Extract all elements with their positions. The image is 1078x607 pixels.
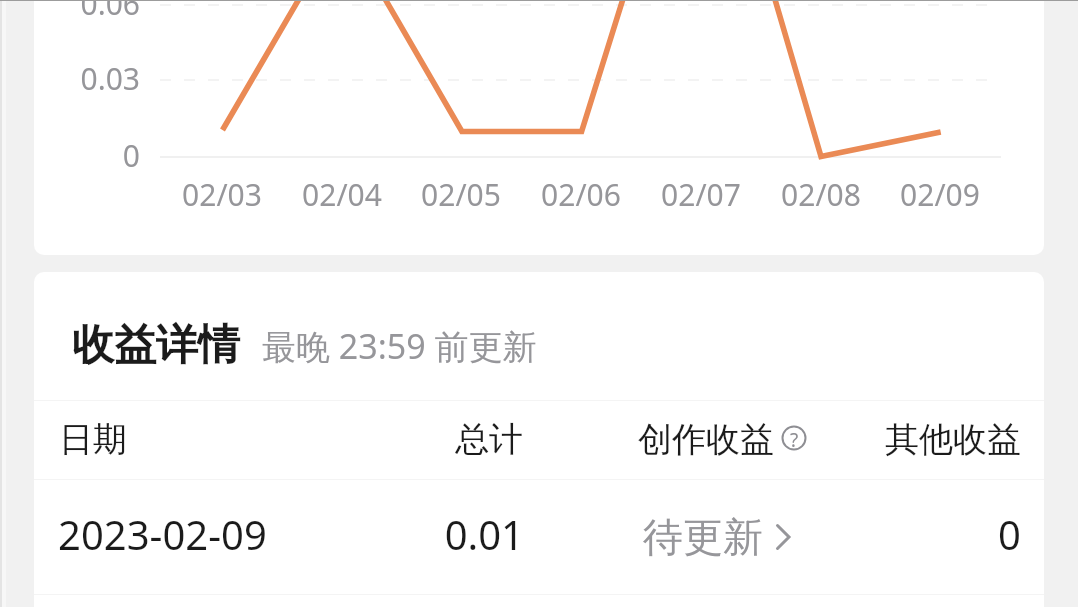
staticText: 待更新 xyxy=(643,512,763,562)
staticText: 日期 xyxy=(59,418,259,461)
staticText: 0 xyxy=(821,507,1021,561)
staticText: 2023-02-09 xyxy=(58,507,378,561)
button[interactable]: 创作收益说明 xyxy=(782,426,806,450)
staticText: 0.06 xyxy=(0,0,140,24)
staticText: 0.03 xyxy=(0,58,140,99)
staticText: 其他收益 xyxy=(821,418,1021,461)
staticText: 02/09 xyxy=(870,174,1010,215)
button[interactable] xyxy=(34,480,1044,594)
staticText: 创作收益 xyxy=(638,418,838,461)
staticText: 02/08 xyxy=(751,174,891,215)
staticText: 0.01 xyxy=(350,507,524,561)
staticText: 最晚 23:59 前更新 xyxy=(262,323,537,369)
staticText: 收益详情 xyxy=(72,319,240,372)
staticText: 02/04 xyxy=(272,174,412,215)
button[interactable]: 待更新 xyxy=(643,512,792,562)
staticText: 02/07 xyxy=(631,174,771,215)
staticText: 总计 xyxy=(350,418,523,461)
staticText: 02/06 xyxy=(511,174,651,215)
staticText: 02/03 xyxy=(152,174,292,215)
staticText: 0 xyxy=(0,135,140,176)
staticText: ? xyxy=(782,427,806,451)
staticText: 02/05 xyxy=(391,174,531,215)
